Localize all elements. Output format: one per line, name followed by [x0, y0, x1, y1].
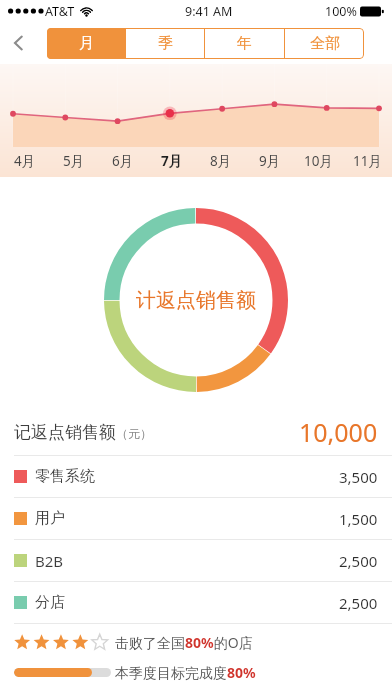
staticText: AT&T — [45, 3, 75, 20]
staticText: 季 — [158, 34, 173, 53]
button[interactable]: 年 — [205, 28, 284, 59]
staticText: B2B — [35, 551, 64, 571]
button[interactable]: 月 — [47, 28, 125, 59]
button[interactable]: 记返点销售额（元） — [14, 409, 378, 455]
staticText: 记返点销售额（元） — [14, 422, 152, 443]
staticText: 6月 — [112, 152, 134, 170]
staticText: 年 — [237, 34, 252, 53]
staticText: 分店 — [35, 593, 65, 612]
staticText: 2,500 — [339, 593, 378, 613]
button[interactable]: 分店 — [14, 582, 378, 623]
staticText: 本季度目标完成度80% — [115, 663, 256, 682]
staticText: 9月 — [259, 152, 281, 170]
button[interactable]: 用户 — [14, 498, 378, 539]
staticText: 击败了全国80%的O店 — [115, 633, 253, 652]
staticText: 2,500 — [339, 551, 378, 571]
staticText: 1,500 — [339, 509, 378, 529]
staticText: 10月 — [304, 152, 333, 170]
button[interactable]: 零售系统 — [14, 456, 378, 497]
staticText: 月 — [79, 34, 94, 53]
staticText: 9:41 AM — [185, 3, 233, 20]
staticText: 10,000 — [299, 415, 378, 449]
staticText: 7月 — [161, 152, 183, 170]
staticText: 100% — [325, 3, 357, 20]
button[interactable]: B2B — [14, 540, 378, 581]
button[interactable]: Back — [0, 22, 38, 64]
button[interactable]: 全部 — [285, 28, 364, 59]
staticText: 8月 — [210, 152, 232, 170]
button[interactable]: 季 — [126, 28, 204, 59]
staticText: 用户 — [35, 509, 65, 528]
staticText: 4月 — [14, 152, 36, 170]
staticText: 5月 — [63, 152, 85, 170]
staticText: 零售系统 — [35, 467, 95, 486]
staticText: 计返点销售额 — [136, 288, 256, 313]
staticText: 3,500 — [339, 467, 378, 487]
staticText: 全部 — [310, 34, 340, 53]
staticText: 11月 — [353, 152, 382, 170]
